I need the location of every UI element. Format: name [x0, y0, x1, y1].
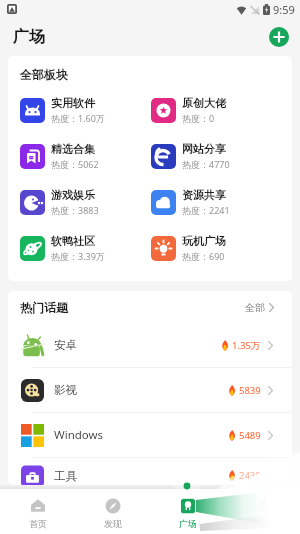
staticText: 2430: [239, 469, 261, 482]
staticText: 热度：5062: [51, 158, 99, 170]
button[interactable]: 影视: [8, 368, 292, 412]
button[interactable]: 实用软件: [8, 87, 139, 133]
staticText: 热度：1.60万: [51, 112, 105, 124]
staticText: Windows: [54, 427, 104, 443]
staticText: 热门话题: [20, 300, 68, 315]
button[interactable]: 全部: [245, 301, 274, 314]
staticText: 首页: [29, 518, 47, 529]
button[interactable]: 玩机广场: [139, 225, 292, 271]
staticText: 网站分享: [182, 142, 226, 156]
staticText: 1.35万: [232, 339, 261, 352]
staticText: 热度：2241: [182, 204, 230, 216]
staticText: 9:59: [273, 2, 295, 17]
button[interactable]: 原创大佬: [139, 87, 292, 133]
staticText: 安卓: [54, 338, 77, 352]
button[interactable]: Windows: [8, 413, 292, 457]
staticText: 全部板块: [20, 67, 68, 82]
staticText: 广场: [179, 518, 197, 529]
button[interactable]: 首页: [0, 489, 75, 534]
staticText: 热度：3883: [51, 204, 99, 216]
staticText: 工具: [54, 469, 77, 483]
button[interactable]: 工具: [8, 458, 292, 485]
staticText: 热度：690: [182, 250, 225, 262]
button[interactable]: 发现: [75, 489, 150, 534]
staticText: 发现: [104, 518, 122, 529]
button[interactable]: 网站分享: [139, 133, 292, 179]
staticText: 精选合集: [51, 142, 95, 156]
staticText: 热度：0: [182, 112, 215, 124]
staticText: 游戏娱乐: [51, 188, 95, 202]
staticText: 热度：3.39万: [51, 250, 105, 262]
button[interactable]: 精选合集: [8, 133, 139, 179]
button[interactable]: 安卓: [8, 323, 292, 367]
button[interactable]: 软鸭社区: [8, 225, 139, 271]
button[interactable]: 我的: [225, 489, 300, 534]
staticText: 原创大佬: [182, 96, 226, 110]
button[interactable]: 资源共享: [139, 179, 292, 225]
staticText: 广场: [13, 27, 45, 47]
button[interactable]: 游戏娱乐: [8, 179, 139, 225]
staticText: 5489: [239, 429, 261, 442]
button[interactable]: Add: [269, 27, 289, 47]
staticText: 影视: [54, 383, 77, 397]
button[interactable]: 广场: [150, 489, 225, 534]
staticText: 5839: [239, 384, 261, 397]
staticText: 热度：4770: [182, 158, 230, 170]
staticText: 我的: [254, 518, 272, 529]
staticText: 玩机广场: [182, 234, 226, 248]
staticText: 实用软件: [51, 96, 95, 110]
staticText: 软鸭社区: [51, 234, 95, 248]
staticText: 全部: [245, 301, 265, 314]
staticText: 资源共享: [182, 188, 226, 202]
